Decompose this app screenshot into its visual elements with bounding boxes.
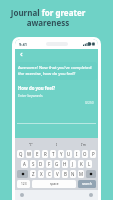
staticText: I'm [81,142,86,147]
button[interactable]: N [70,170,76,178]
button[interactable]: Delete [86,170,96,178]
staticText: K [80,161,83,167]
staticText: B [64,171,67,177]
button[interactable]: A [21,160,28,168]
button[interactable]: J [70,160,76,168]
button[interactable]: E [34,150,40,158]
button[interactable]: Back [17,50,25,58]
staticText: E [36,151,39,157]
button[interactable]: G [54,160,60,168]
button[interactable]: M [78,170,84,178]
staticText: G [55,161,59,167]
staticText: Y [60,151,63,157]
button[interactable]: X [38,170,44,178]
button[interactable]: U [66,150,72,158]
button[interactable]: P [90,150,96,158]
button[interactable]: Dictation [89,193,93,197]
staticText: T [52,151,55,157]
staticText: space [50,182,59,186]
button[interactable]: O [82,150,88,158]
staticText: O [83,151,87,157]
staticText: D [39,161,43,167]
staticText: V [56,171,59,177]
staticText: X [40,171,43,177]
button[interactable]: Shift [17,170,28,178]
button[interactable]: I [44,138,70,150]
button[interactable]: K [78,160,84,168]
staticText: S [32,161,35,167]
button[interactable]: “I” [17,138,44,150]
button[interactable]: H [62,160,68,168]
staticText: How do you feel? [18,85,56,91]
button[interactable]: D [38,160,44,168]
staticText: I [56,142,58,147]
button[interactable]: W [26,150,32,158]
staticText: 9:41 [19,42,27,47]
staticText: L [88,161,91,167]
staticText: search [82,182,92,186]
staticText: R [44,151,47,157]
staticText: 123 [21,182,27,186]
staticText: N [71,171,75,177]
staticText: Awesome! Now that you've completed the e… [18,65,92,77]
staticText: J [72,161,74,167]
button[interactable]: search [78,180,96,188]
staticText: Z [32,171,35,177]
staticText: M [79,171,83,177]
staticText: 0/250 [85,101,94,105]
staticText: Journal for greater awareness [0,7,96,28]
staticText: W [27,151,32,157]
button[interactable]: C [46,170,52,178]
staticText: P [92,151,95,157]
staticText: A [23,161,26,167]
button[interactable]: V [54,170,60,178]
staticText: “I” [29,142,33,147]
button[interactable]: I'm [70,138,96,150]
button[interactable]: Emoji [20,193,24,197]
button[interactable]: 123 [17,180,30,188]
button[interactable]: I [74,150,80,158]
staticText: F [48,161,51,167]
staticText: C [48,171,51,177]
button[interactable]: space [32,180,76,188]
button[interactable]: Q [17,150,24,158]
button[interactable]: L [86,160,92,168]
staticText: H [63,161,67,167]
button[interactable]: F [46,160,52,168]
staticText: I [76,151,78,157]
button[interactable]: T [50,150,56,158]
button[interactable]: Z [30,170,36,178]
button[interactable]: S [30,160,36,168]
button[interactable]: B [62,170,68,178]
button[interactable]: Y [58,150,64,158]
button[interactable]: R [42,150,48,158]
staticText: Enter keywords [18,93,43,98]
staticText: Q [19,151,23,157]
staticText: U [67,151,71,157]
